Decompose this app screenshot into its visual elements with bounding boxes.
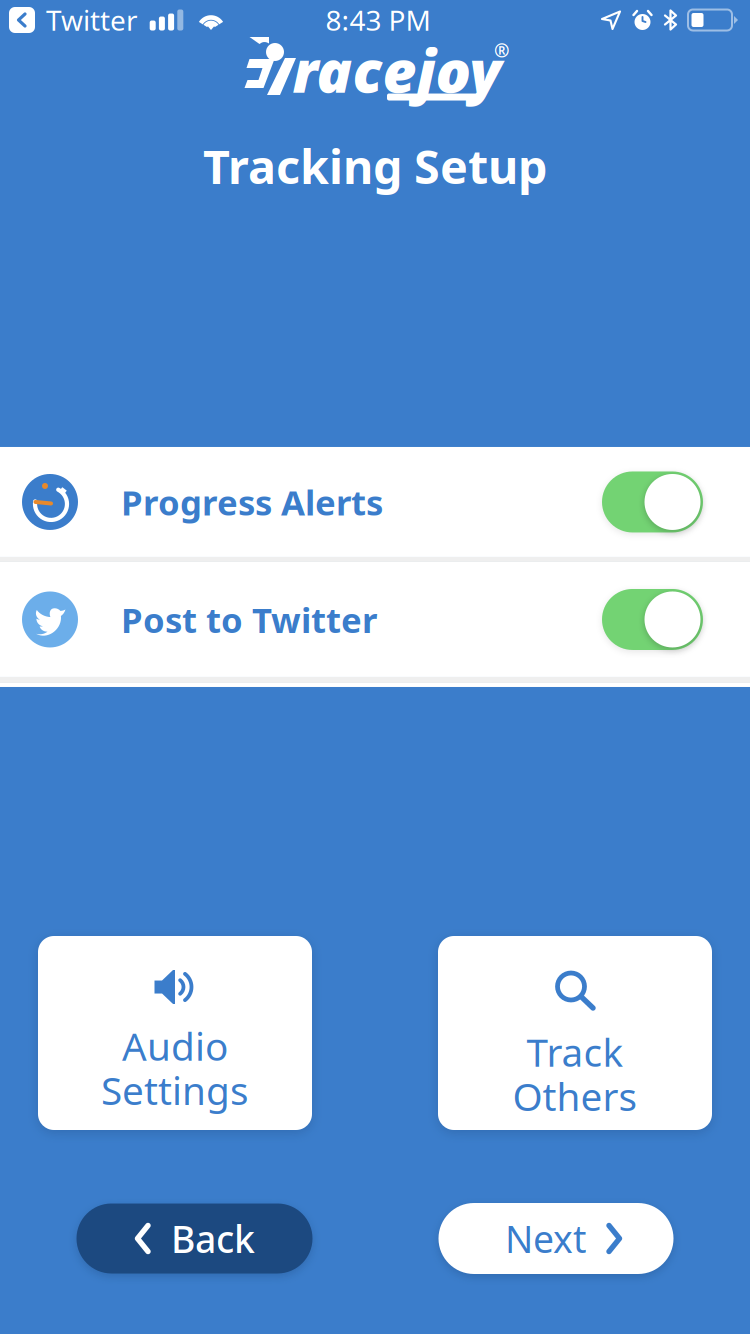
button[interactable]: Progress Alerts [0,447,750,557]
staticText: Next [505,1214,586,1263]
button[interactable]: Post to Twitter [0,562,750,677]
staticText: Audio [122,1020,228,1071]
staticText: Others [512,1070,637,1122]
button[interactable]: Audio Settings [38,936,312,1130]
staticText: Progress Alerts [121,479,383,525]
button[interactable]: Next [438,1203,673,1274]
staticText: 8:43 PM [325,1,430,39]
staticText: ® [494,38,510,62]
staticText: racejoy [292,31,501,109]
staticText: Back [171,1214,255,1263]
staticText: Track [526,1026,623,1077]
button[interactable]: Track Others [438,936,712,1130]
staticText: Post to Twitter [121,596,377,642]
staticText: Tracking Setup [203,135,547,197]
button[interactable]: Back [76,1203,312,1273]
staticText: Twitter [46,1,138,39]
staticText: Settings [101,1064,249,1116]
